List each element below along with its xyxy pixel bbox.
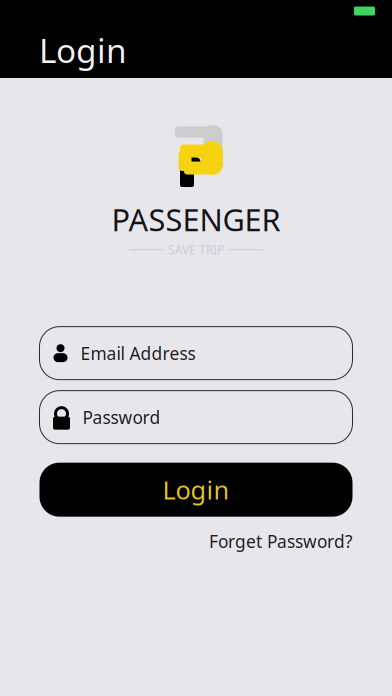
button[interactable]: Login: [39, 463, 352, 517]
button[interactable]: Forget Password?: [209, 530, 353, 553]
staticText: Forget Password?: [209, 530, 353, 553]
button[interactable]: Password: [39, 391, 352, 444]
staticText: SAVE TRIP: [168, 242, 224, 258]
staticText: Password: [82, 406, 160, 429]
button[interactable]: Email Address: [39, 327, 352, 380]
staticText: Email Address: [80, 342, 195, 365]
staticText: PASSENGER: [111, 199, 280, 240]
staticText: Login: [39, 28, 127, 72]
staticText: Login: [162, 473, 229, 506]
